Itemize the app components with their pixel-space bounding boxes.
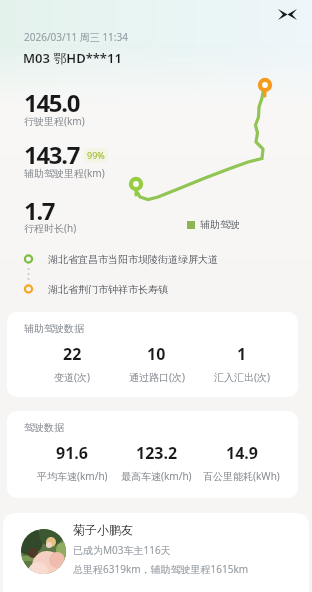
- staticText: 驾驶数据: [24, 421, 64, 434]
- staticText: 湖北省宜昌市当阳市坝陵街道绿屏大道: [48, 253, 218, 266]
- staticText: 总里程6319km，辅助驾驶里程1615km: [73, 562, 249, 576]
- staticText: 22: [63, 343, 82, 365]
- staticText: 10: [147, 343, 166, 365]
- button[interactable]: 驾驶数据: [7, 411, 298, 498]
- staticText: 辅助驾驶: [200, 218, 240, 231]
- staticText: 2026/03/11 周三 11:34: [24, 30, 128, 44]
- staticText: 辅助驾驶数据: [24, 322, 84, 335]
- staticText: 行程时长(h): [24, 221, 77, 235]
- staticText: 通过路口(次): [129, 370, 185, 384]
- staticText: 91.6: [56, 442, 88, 464]
- staticText: 99%: [87, 149, 105, 161]
- staticText: 汇入汇出(次): [214, 370, 270, 384]
- staticText: 最高车速(km/h): [121, 469, 192, 483]
- staticText: M03 鄂HD***11: [23, 49, 122, 67]
- staticText: 行驶里程(km): [24, 114, 85, 128]
- staticText: 123.2: [136, 442, 178, 464]
- staticText: 1.7: [24, 194, 55, 227]
- button[interactable]: 辅助驾驶数据: [7, 312, 298, 397]
- button[interactable]: 菊子小鹏友: [3, 513, 309, 592]
- staticText: 14.9: [226, 442, 258, 464]
- staticText: 平均车速(km/h): [37, 469, 108, 483]
- staticText: 辅助驾驶里程(km): [24, 166, 105, 180]
- staticText: 湖北省荆门市钟祥市长寿镇: [48, 283, 168, 296]
- staticText: 143.7: [24, 138, 80, 171]
- staticText: 菊子小鹏友: [73, 522, 133, 537]
- staticText: 已成为M03车主116天: [73, 543, 171, 557]
- staticText: 145.0: [24, 86, 80, 119]
- staticText: 1: [237, 343, 247, 365]
- staticText: 变道(次): [54, 370, 90, 384]
- button[interactable]: [272, 2, 302, 26]
- staticText: 百公里能耗(kWh): [203, 469, 280, 483]
